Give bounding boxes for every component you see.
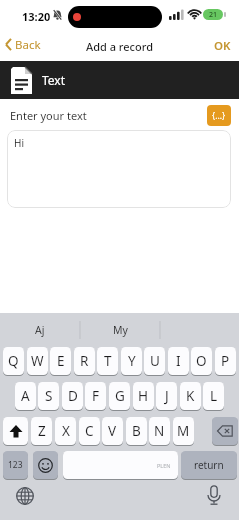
button[interactable]: OK <box>206 34 239 58</box>
staticText: X <box>62 422 70 440</box>
staticText: 21 <box>209 10 218 20</box>
button[interactable] <box>212 417 238 445</box>
button[interactable]: Z <box>31 417 52 445</box>
staticText: C <box>85 422 94 440</box>
button[interactable]: Y <box>121 347 142 375</box>
button[interactable]: Hi <box>7 130 231 208</box>
button[interactable]: O <box>191 347 212 375</box>
button[interactable]: J <box>156 382 177 410</box>
button[interactable]: P <box>215 347 236 375</box>
staticText: R <box>80 352 89 370</box>
button[interactable]: W <box>27 347 48 375</box>
staticText: Enter your text <box>10 108 87 123</box>
button[interactable]: G <box>109 382 130 410</box>
staticText: F <box>92 387 100 405</box>
staticText: G <box>115 387 125 405</box>
staticText: OK <box>214 38 231 54</box>
button[interactable]: T <box>97 347 118 375</box>
button[interactable]: PLEN <box>63 451 178 479</box>
button[interactable]: U <box>144 347 165 375</box>
button[interactable]: 123 <box>3 451 28 479</box>
button[interactable]: M <box>173 417 194 445</box>
staticText: H <box>138 387 149 405</box>
staticText: T <box>104 352 112 370</box>
staticText: S <box>45 387 53 405</box>
staticText: D <box>68 387 78 405</box>
staticText: I <box>176 352 181 370</box>
staticText: A <box>21 387 30 405</box>
staticText: Q <box>8 352 19 370</box>
staticText: Aj <box>35 323 45 337</box>
staticText: Z <box>38 422 46 440</box>
staticText: L <box>210 387 218 405</box>
staticText: return <box>194 458 224 472</box>
button[interactable] <box>196 479 231 511</box>
staticText: 123 <box>8 459 23 471</box>
staticText: V <box>108 422 117 440</box>
button[interactable]: C <box>79 417 100 445</box>
button[interactable] <box>33 451 58 479</box>
button[interactable]: D <box>62 382 83 410</box>
staticText: P <box>221 352 230 370</box>
button[interactable]: X <box>55 417 76 445</box>
button[interactable]: Q <box>3 347 24 375</box>
button[interactable]: {...} <box>207 105 231 126</box>
button[interactable]: K <box>180 382 201 410</box>
staticText: PLEN <box>157 462 171 469</box>
staticText: Back <box>15 37 41 53</box>
staticText: {...} <box>212 110 226 122</box>
button[interactable]: Aj <box>0 313 80 347</box>
staticText: O <box>196 352 207 370</box>
staticText: B <box>132 422 141 440</box>
staticText: W <box>31 352 44 370</box>
staticText: E <box>57 352 65 370</box>
staticText: U <box>150 352 160 370</box>
staticText: J <box>165 387 169 405</box>
staticText: My <box>113 323 128 337</box>
button[interactable]: H <box>133 382 154 410</box>
staticText: K <box>186 387 195 405</box>
staticText: M <box>177 422 190 440</box>
staticText: 13:20 <box>22 9 51 24</box>
button[interactable]: S <box>38 382 59 410</box>
button[interactable]: A <box>15 382 36 410</box>
button[interactable]: R <box>74 347 95 375</box>
button[interactable]: N <box>149 417 170 445</box>
button[interactable] <box>8 481 42 510</box>
button[interactable]: F <box>85 382 106 410</box>
button[interactable]: L <box>203 382 224 410</box>
staticText: Hi <box>14 136 24 150</box>
button[interactable]: Back <box>0 34 70 58</box>
staticText: Y <box>128 352 136 370</box>
button[interactable]: B <box>126 417 147 445</box>
button[interactable]: I <box>168 347 189 375</box>
button[interactable] <box>3 417 28 445</box>
staticText: N <box>154 422 165 440</box>
staticText: Add a record <box>86 39 153 54</box>
staticText: Text <box>42 72 66 88</box>
button[interactable]: E <box>50 347 71 375</box>
button[interactable]: My <box>80 313 160 347</box>
button[interactable]: V <box>102 417 123 445</box>
button[interactable]: return <box>181 451 237 479</box>
